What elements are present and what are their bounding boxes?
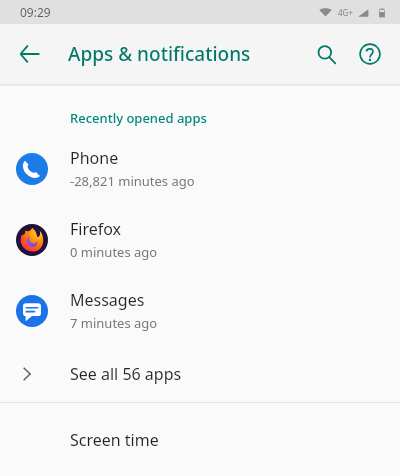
button[interactable]: See all 56 apps	[0, 346, 400, 402]
staticText: Apps & notifications	[68, 41, 251, 67]
staticText: Screen time	[70, 429, 159, 451]
staticText: -28,821 minutes ago	[70, 172, 195, 190]
button[interactable]: Screen time	[0, 403, 400, 476]
staticText: 7 minutes ago	[70, 314, 158, 332]
staticText: See all 56 apps	[70, 363, 182, 385]
button[interactable]: Messages	[0, 275, 400, 346]
button[interactable]: Search	[304, 32, 348, 76]
staticText: Phone	[70, 147, 119, 169]
staticText: Recently opened apps	[70, 109, 207, 127]
staticText: Firefox	[70, 218, 122, 240]
staticText: 0 minutes ago	[70, 243, 158, 261]
staticText: Messages	[70, 289, 145, 311]
staticText: 09:29	[20, 4, 51, 20]
button[interactable]: Back	[8, 32, 52, 76]
staticText: 4G+	[338, 7, 353, 18]
button[interactable]: Phone	[0, 133, 400, 204]
button[interactable]: Firefox	[0, 204, 400, 275]
button[interactable]: Help	[348, 32, 392, 76]
